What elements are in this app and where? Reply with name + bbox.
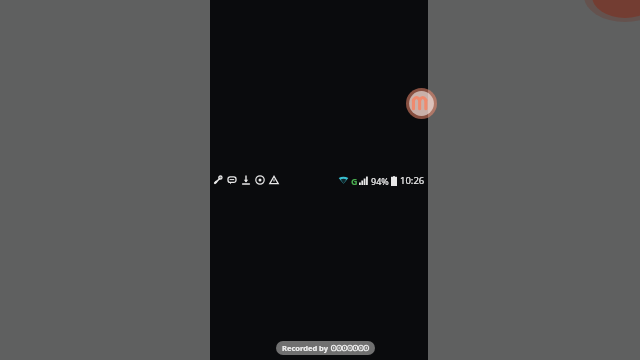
- other: Mobizen watermark: [406, 88, 437, 119]
- staticText: G: [351, 175, 358, 187]
- staticText: 10:26: [400, 174, 425, 187]
- staticText: 94%: [371, 175, 389, 187]
- button[interactable]: Recorded by: [276, 341, 375, 355]
- staticText: Recorded by: [282, 343, 328, 353]
